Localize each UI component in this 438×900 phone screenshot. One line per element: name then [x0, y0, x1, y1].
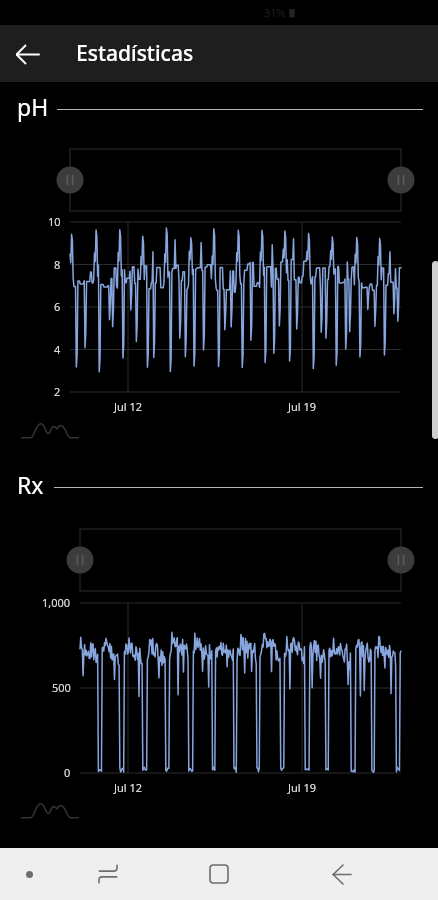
staticText: Rx	[17, 469, 44, 500]
staticText: 31%	[264, 5, 286, 20]
button[interactable]: Recent apps	[58, 848, 158, 900]
staticText: Estadísticas	[76, 39, 194, 68]
staticText: pH	[17, 91, 49, 122]
button[interactable]: Back	[6, 33, 48, 75]
button[interactable]: Range start handle	[66, 546, 94, 574]
staticText: Jul 19	[288, 780, 317, 795]
staticText: 1,000	[42, 595, 71, 610]
button[interactable]: Range end handle	[387, 166, 415, 194]
staticText: 10	[48, 214, 61, 229]
button[interactable]: Range start handle	[56, 166, 84, 194]
button[interactable]: Range end handle	[387, 546, 415, 574]
staticText: 6	[54, 299, 61, 314]
button[interactable]: Back	[280, 848, 402, 900]
staticText: 8	[54, 257, 61, 272]
staticText: 0	[64, 765, 71, 780]
staticText: Jul 12	[114, 780, 143, 795]
staticText: Jul 12	[114, 399, 143, 414]
staticText: 500	[52, 680, 71, 695]
button[interactable]: Home	[158, 848, 280, 900]
button[interactable]: Notifications	[0, 848, 58, 900]
staticText: 2	[54, 384, 61, 399]
staticText: 4	[54, 342, 61, 357]
staticText: Jul 19	[288, 399, 317, 414]
